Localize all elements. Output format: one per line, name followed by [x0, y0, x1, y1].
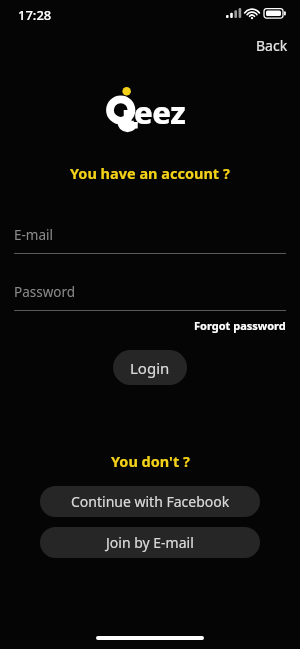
staticText: Forgot password [194, 318, 286, 333]
button[interactable]: Forgot password [194, 318, 286, 333]
staticText: eez [134, 91, 186, 133]
staticText: Login [130, 358, 170, 378]
staticText: You don't ? [111, 451, 190, 471]
staticText: Password [14, 283, 76, 301]
button[interactable]: E-mail [14, 226, 286, 254]
staticText: Continue with Facebook [71, 492, 230, 511]
staticText: 17:28 [18, 6, 52, 24]
staticText: E-mail [14, 226, 54, 244]
button[interactable]: Continue with Facebook [40, 486, 260, 517]
staticText: You have an account ? [70, 163, 230, 183]
staticText: Join by E-mail [106, 533, 194, 552]
button[interactable]: Back [244, 33, 300, 58]
button[interactable]: Password [14, 283, 286, 311]
button[interactable]: Join by E-mail [40, 527, 260, 558]
staticText: Back [256, 36, 288, 55]
button[interactable]: Login [113, 350, 187, 385]
